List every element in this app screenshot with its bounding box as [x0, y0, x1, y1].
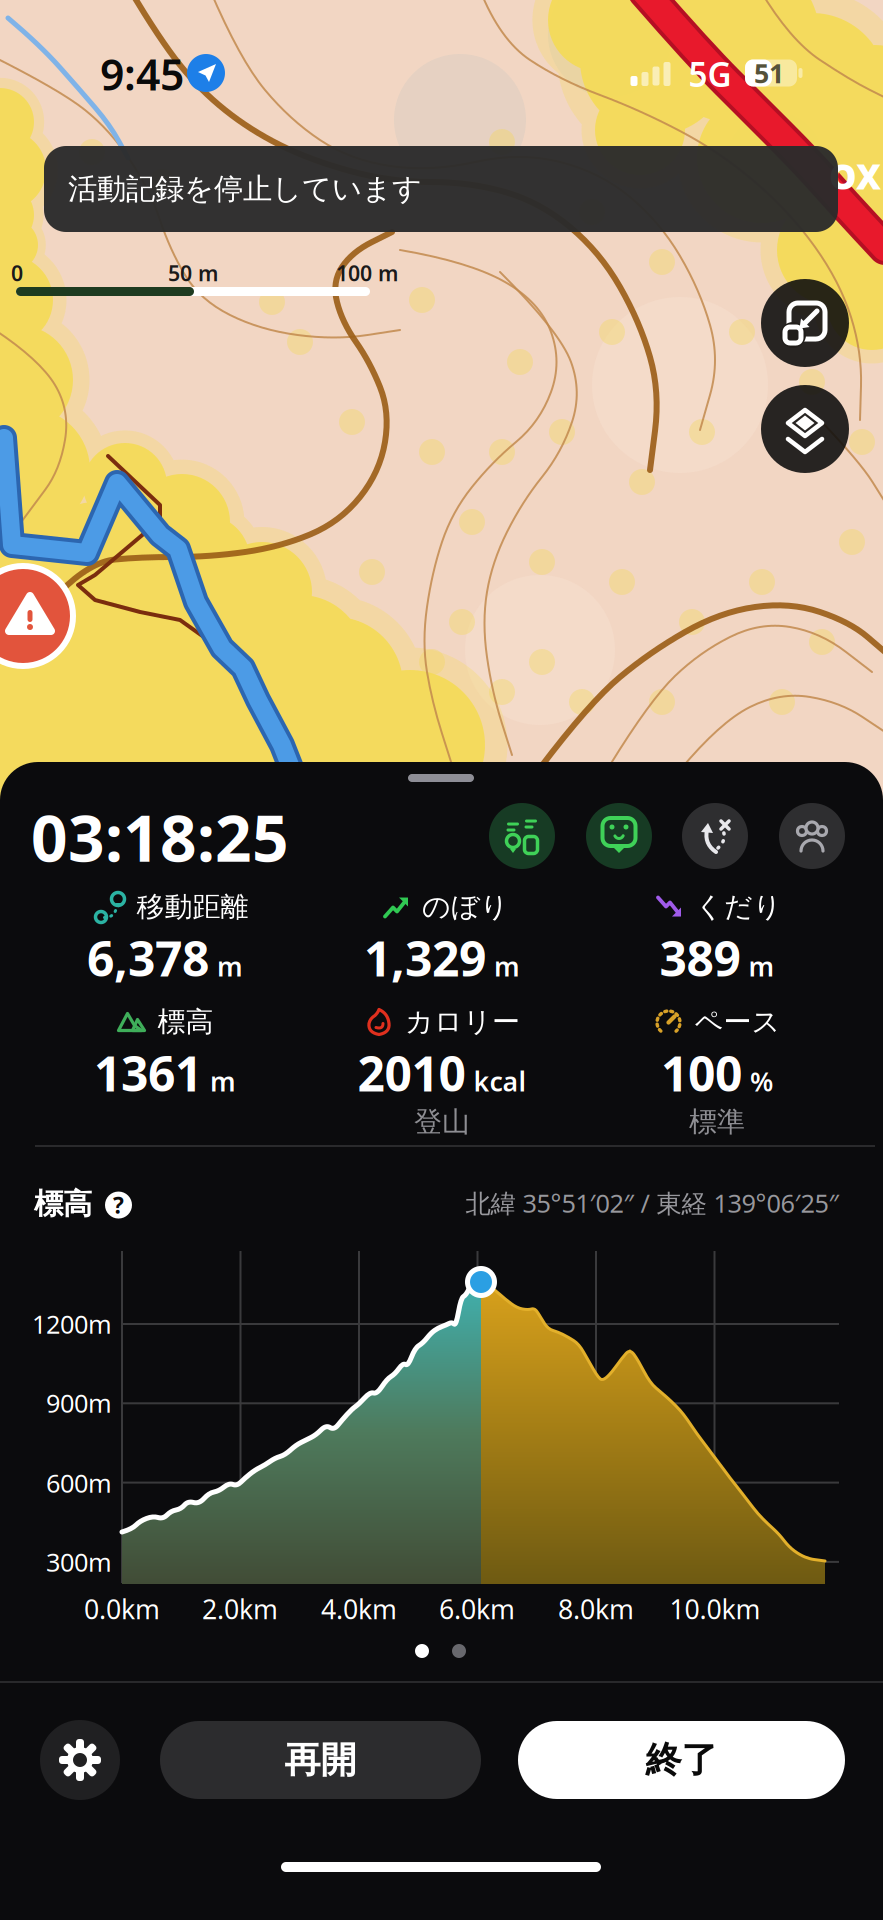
staticText: カロリー [405, 1005, 520, 1039]
staticText: 2.0km [202, 1591, 278, 1627]
staticText: 1200m [32, 1307, 112, 1341]
button[interactable]: 再開 [160, 1721, 481, 1799]
button[interactable]: Shrink map [761, 279, 849, 367]
staticText: 900m [46, 1386, 112, 1420]
staticText: m [210, 1064, 236, 1099]
staticText: 標準 [689, 1105, 745, 1139]
button[interactable]: Map layers [761, 385, 849, 473]
staticText: 6.0km [439, 1591, 515, 1627]
staticText: 終了 [645, 1738, 717, 1782]
staticText: 2010 [357, 1041, 465, 1105]
staticText: 0 [11, 259, 23, 287]
button[interactable]: Route [682, 803, 748, 869]
staticText: ? [113, 1190, 124, 1220]
staticText: 移動距離 [136, 890, 248, 924]
staticText: 1,329 [364, 926, 486, 990]
staticText: 登山 [414, 1105, 470, 1139]
staticText: 100 m [336, 259, 398, 287]
staticText: 8.0km [558, 1591, 634, 1627]
staticText: OX [829, 153, 881, 199]
button[interactable]: About elevation [105, 1190, 132, 1220]
staticText: 50 m [168, 259, 218, 287]
button[interactable]: Members [779, 803, 845, 869]
staticText: 6,378 [87, 926, 209, 990]
staticText: 100 [661, 1041, 742, 1105]
staticText: 9:45 [100, 46, 184, 102]
staticText: 03:18:25 [31, 794, 289, 879]
staticText: 再開 [284, 1738, 356, 1782]
button[interactable]: Settings [40, 1720, 120, 1800]
staticText: % [750, 1064, 773, 1099]
staticText: 標高 [157, 1005, 213, 1039]
staticText: 北緯 35°51′02″ / 東経 139°06′25″ [465, 1186, 838, 1220]
staticText: ペース [694, 1005, 780, 1039]
staticText: くだり [695, 890, 782, 924]
staticText: 600m [46, 1466, 112, 1500]
staticText: 0.0km [84, 1591, 160, 1627]
staticText: m [494, 949, 520, 984]
staticText: m [217, 949, 243, 984]
staticText: 10.0km [669, 1591, 760, 1627]
button[interactable]: Beacon [489, 803, 555, 869]
staticText: 389 [659, 926, 740, 990]
staticText: 4.0km [321, 1591, 397, 1627]
staticText: のぼり [422, 890, 509, 924]
staticText: 標高 [34, 1186, 92, 1222]
staticText: 1361 [94, 1041, 202, 1105]
staticText: m [748, 949, 774, 984]
button[interactable]: Status sharing [586, 803, 652, 869]
staticText: 5G [688, 52, 731, 96]
staticText: 51 [754, 55, 784, 91]
staticText: 300m [46, 1545, 112, 1579]
staticText: kcal [473, 1064, 526, 1099]
button[interactable]: 終了 [518, 1721, 845, 1799]
staticText: 活動記録を停止しています [68, 171, 422, 207]
